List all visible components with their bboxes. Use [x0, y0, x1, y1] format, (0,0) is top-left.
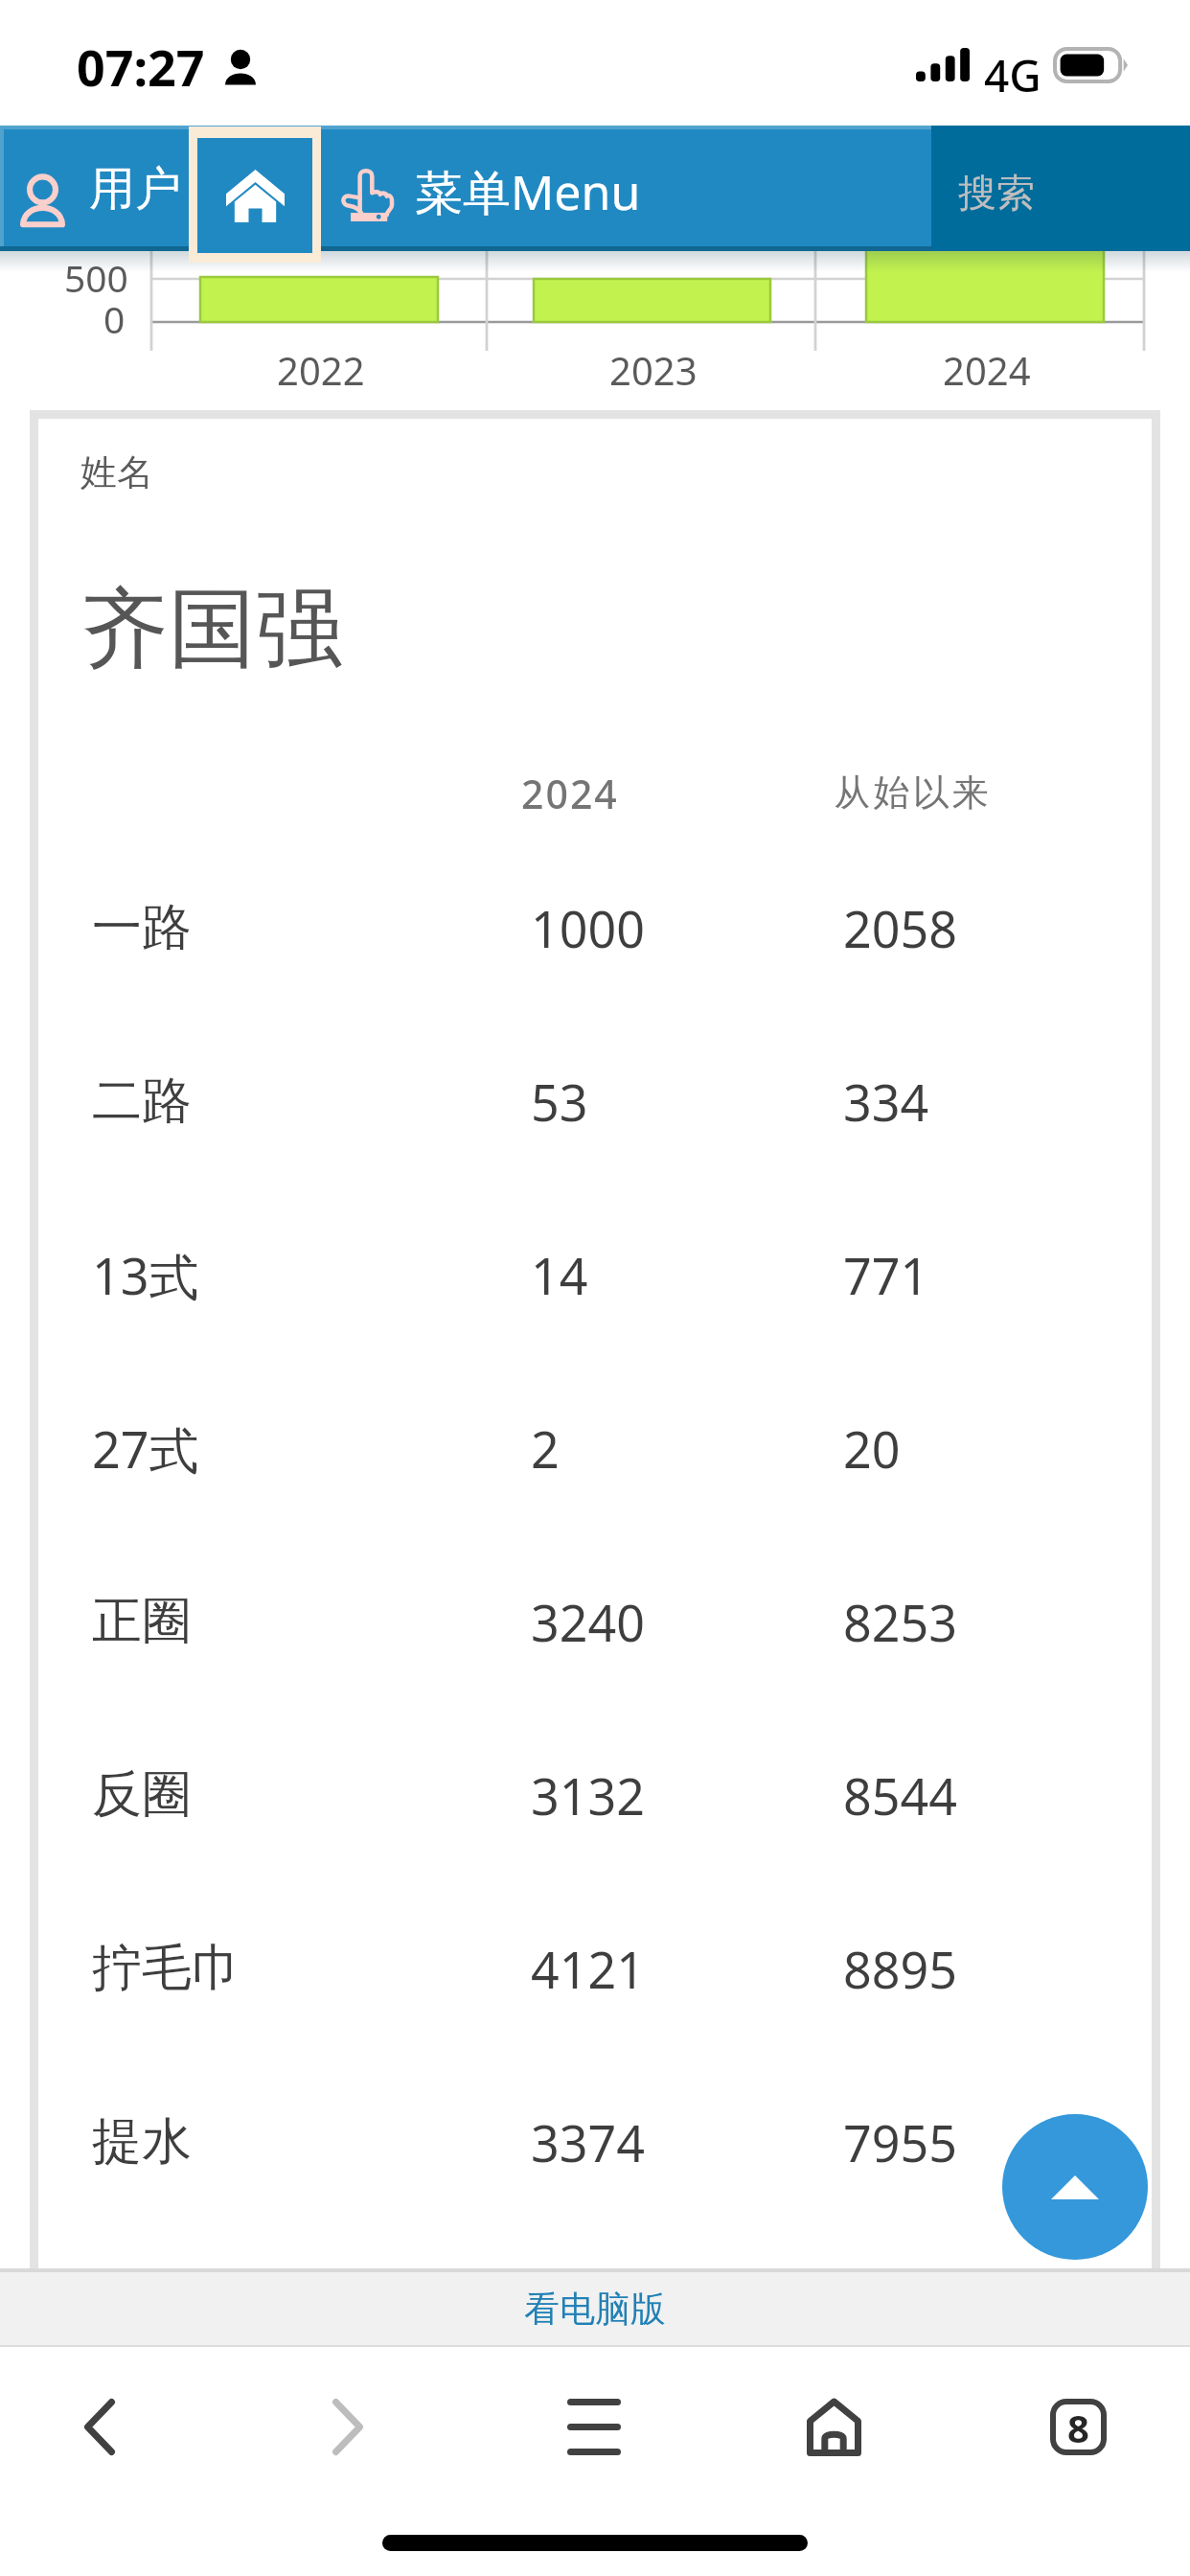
button[interactable]: 用户	[0, 126, 189, 251]
button[interactable]: 正圈	[38, 1569, 1152, 1674]
staticText: 2024	[943, 344, 1031, 396]
staticText: 14	[531, 1241, 588, 1309]
staticText: 4121	[531, 1935, 645, 2003]
staticText: 07:27	[77, 33, 205, 101]
button[interactable]: 一路	[38, 875, 1152, 980]
staticText: 提水	[92, 2110, 192, 2173]
button[interactable]: Forward	[281, 2374, 415, 2479]
staticText: 13式	[92, 1241, 199, 1309]
staticText: 姓名	[80, 449, 153, 495]
staticText: 菜单Menu	[415, 159, 641, 224]
button[interactable]: Tabs	[1011, 2374, 1145, 2479]
staticText: 3374	[531, 2108, 645, 2176]
staticText: 用户	[89, 160, 181, 218]
staticText: 2058	[843, 894, 957, 962]
button[interactable]: 13式	[38, 1222, 1152, 1327]
button[interactable]: Back	[33, 2374, 167, 2479]
staticText: 7955	[843, 2108, 957, 2176]
staticText: 反圈	[92, 1763, 192, 1827]
staticText: 拧毛巾	[92, 1937, 241, 2000]
staticText: 1000	[531, 894, 645, 962]
staticText: 8	[1067, 2402, 1089, 2453]
staticText: 27式	[92, 1414, 199, 1483]
staticText: 771	[843, 1241, 929, 1309]
button[interactable]: 二路	[38, 1048, 1152, 1154]
staticText: 4G	[984, 45, 1041, 105]
staticText: 500	[64, 252, 128, 303]
staticText: 8253	[843, 1588, 957, 1656]
staticText: 齐国强	[81, 574, 343, 684]
staticText: 2024	[521, 767, 619, 820]
button[interactable]: Home	[197, 138, 312, 253]
staticText: 20	[843, 1414, 901, 1483]
button[interactable]: 搜索	[931, 126, 1190, 251]
button[interactable]: 看电脑版	[0, 2272, 1190, 2346]
staticText: 一路	[92, 896, 192, 959]
button[interactable]: 菜单Menu	[321, 126, 931, 251]
button[interactable]: 提水	[38, 2089, 1152, 2195]
staticText: 2023	[609, 344, 698, 396]
staticText: 2022	[277, 344, 365, 396]
staticText: 看电脑版	[524, 2287, 666, 2332]
staticText: 正圈	[92, 1590, 192, 1653]
staticText: 搜索	[958, 169, 1035, 217]
staticText: 从始以来	[833, 770, 990, 816]
staticText: 3132	[531, 1761, 645, 1829]
button[interactable]: Scroll to top	[1002, 2114, 1148, 2260]
button[interactable]: Home	[767, 2374, 901, 2479]
staticText: 3240	[531, 1588, 645, 1656]
button[interactable]: 拧毛巾	[38, 1916, 1152, 2021]
staticText: 334	[843, 1068, 929, 1136]
staticText: 53	[531, 1068, 588, 1136]
staticText: 二路	[92, 1069, 192, 1133]
staticText: 8895	[843, 1935, 957, 2003]
staticText: 0	[103, 293, 126, 344]
staticText: 8544	[843, 1761, 957, 1829]
button[interactable]: 反圈	[38, 1742, 1152, 1848]
button[interactable]: Menu	[527, 2374, 661, 2479]
button[interactable]: 27式	[38, 1395, 1152, 1501]
staticText: 2	[531, 1414, 560, 1483]
